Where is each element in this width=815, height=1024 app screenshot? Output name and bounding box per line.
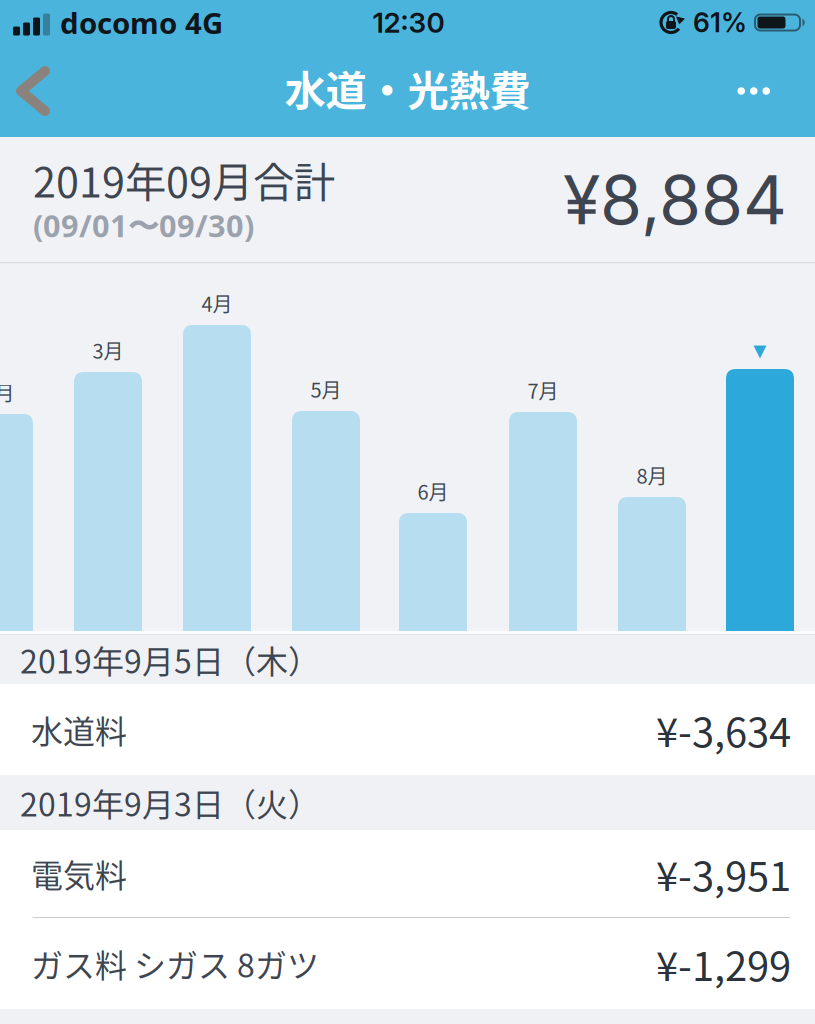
button[interactable]: 6月 [399,513,467,631]
staticText: ¥-3,634 [656,700,791,758]
staticText: docomo 4G [60,2,223,42]
staticText: 8月 [636,460,667,489]
button[interactable]: 電気料 [0,830,815,917]
staticText: 3月 [92,335,123,364]
staticText: 6月 [417,476,448,505]
button[interactable]: ガス料 シガス 8ガツ [0,918,815,1009]
staticText: 7月 [527,375,558,404]
staticText: (09/01〜09/30) [33,204,254,246]
button[interactable]: 8月 [618,497,686,631]
button[interactable]: 9月 [726,369,794,631]
button[interactable]: 水道料 [0,684,815,775]
staticText: ¥8,884 [563,158,787,241]
staticText: ¥-1,299 [656,934,791,992]
staticText: 12:30 [372,6,444,39]
staticText: ¥-3,951 [656,844,791,902]
staticText: 水道・光熱費 [284,58,530,118]
staticText: 2019年9月3日（火） [20,779,320,826]
button[interactable]: 戻る [0,45,75,137]
staticText: 5月 [310,374,341,403]
staticText: 2019年09月合計 [33,150,335,209]
button[interactable]: その他 [709,52,815,130]
staticText: ガス料 シガス 8ガツ [31,940,319,987]
staticText: 電気料 [31,850,127,897]
staticText: 水道料 [31,706,127,753]
staticText: 61% [693,6,747,39]
staticText: 4月 [201,288,232,317]
staticText: 2019年9月5日（木） [20,636,320,683]
staticText: 2月 [0,377,14,406]
